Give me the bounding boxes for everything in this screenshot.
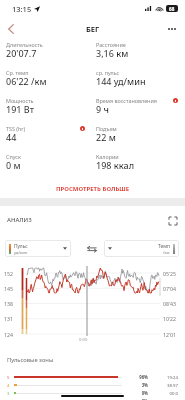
staticText: Пульс [14, 243, 28, 250]
staticText: 152 [4, 270, 13, 277]
button[interactable]: ПРОСМОТРЕТЬ БОЛЬШЕ [0, 180, 185, 198]
staticText: 144 уд/мин [96, 75, 146, 87]
button[interactable]: 2 [7, 397, 178, 400]
staticText: 0% [133, 398, 148, 400]
staticText: 05'25 [163, 270, 177, 277]
staticText: Подъем [96, 125, 117, 132]
staticText: 0% [133, 390, 148, 396]
staticText: 198 ккал [96, 159, 135, 171]
staticText: 68 [169, 6, 175, 12]
staticText: Калории [96, 153, 119, 160]
button[interactable]: Калории [92, 152, 185, 180]
staticText: 191 Вт [6, 103, 34, 115]
button[interactable]: Ср. темп [0, 68, 92, 96]
button[interactable]: Расстояние [92, 40, 185, 68]
staticText: ПРОСМОТРЕТЬ БОЛЬШЕ [56, 185, 130, 193]
staticText: ср. пульс [96, 69, 120, 76]
button[interactable]: Back [0, 18, 21, 39]
button[interactable]: More options [161, 18, 183, 40]
button[interactable]: Длительность [0, 40, 92, 68]
button[interactable]: Expand chart [166, 214, 179, 227]
staticText: Темп [158, 243, 170, 250]
staticText: 3,16 км [96, 47, 129, 59]
staticText: /км [163, 250, 170, 255]
staticText: 06'22 /км [6, 75, 47, 87]
button[interactable]: Время восстановления [92, 96, 185, 124]
staticText: 4 [7, 382, 10, 388]
staticText: 131 [4, 315, 13, 322]
staticText: 3% [133, 382, 148, 388]
button[interactable]: Спуск [0, 152, 92, 180]
staticText: Пульсовые зоны [7, 356, 54, 364]
staticText: 0 м [6, 159, 21, 171]
staticText: 3 [7, 390, 10, 396]
staticText: БЕГ [86, 24, 100, 34]
staticText: 20'07.7 [6, 47, 37, 59]
staticText: 13:15 [12, 4, 32, 14]
staticText: Спуск [6, 153, 21, 160]
staticText: 22 м [96, 131, 116, 143]
staticText: Расстояние [96, 41, 126, 48]
staticText: 44 [6, 131, 17, 143]
staticText: 38.97 [157, 382, 178, 388]
button[interactable]: Пульс [5, 240, 71, 257]
staticText: 08'43 [163, 300, 177, 307]
staticText: АНАЛИЗ [7, 216, 32, 224]
staticText: 96% [133, 374, 148, 380]
staticText: 00.0 [157, 390, 178, 396]
button[interactable]: 5 [7, 373, 178, 381]
staticText: Длительность [6, 41, 43, 48]
staticText: 9 ч [96, 103, 109, 115]
staticText: Время восстановления [96, 97, 157, 104]
staticText: 10'22 [163, 315, 177, 322]
staticText: TSS (hr) [6, 125, 26, 132]
staticText: уд/мин [14, 250, 28, 255]
staticText: 138 [4, 300, 13, 307]
button[interactable]: TSS (hr) [0, 124, 92, 152]
staticText: 19:24 [157, 374, 178, 380]
staticText: 145 [4, 285, 13, 292]
button[interactable]: Подъем [92, 124, 185, 152]
button[interactable]: ср. пульс [92, 68, 185, 96]
button[interactable]: Swap chart axes [84, 241, 100, 257]
staticText: 0:00 [79, 337, 88, 343]
staticText: Мощность [6, 97, 34, 104]
button[interactable]: Темп [104, 240, 179, 257]
staticText: 12'01 [163, 331, 177, 338]
button[interactable]: 4 [7, 381, 178, 389]
staticText: 124 [4, 331, 13, 338]
button[interactable]: Мощность [0, 96, 92, 124]
staticText: 07'04 [163, 285, 177, 292]
staticText: 5 [7, 374, 10, 380]
staticText: Ср. темп [6, 69, 29, 76]
button[interactable]: 3 [7, 389, 178, 397]
